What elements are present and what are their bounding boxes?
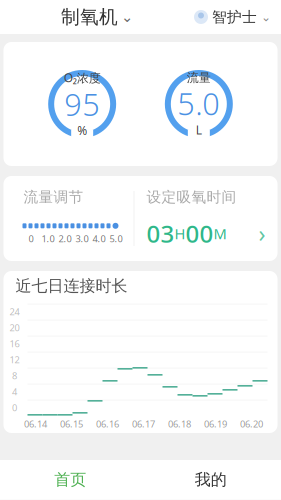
staticText: 06.19 (204, 418, 227, 430)
staticText: 设定吸氧时间 (146, 188, 236, 206)
staticText: % (77, 122, 87, 138)
staticText: 5.0 (177, 83, 220, 124)
staticText: 制氧机 (61, 5, 118, 28)
staticText: 8 (12, 369, 17, 382)
staticText: 0 (28, 232, 33, 245)
staticText: 06.20 (240, 418, 263, 430)
staticText: 4 (12, 385, 17, 398)
staticText: 3.0 (75, 232, 88, 245)
staticText: 近七日连接时长 (15, 276, 127, 296)
staticText: 95 (64, 84, 100, 124)
staticText: 16 (9, 337, 19, 350)
staticText: 06.15 (60, 418, 83, 430)
button[interactable]: 我的 (140, 460, 281, 500)
staticText: 流量调节 (23, 188, 83, 206)
staticText: 03 (146, 218, 174, 249)
staticText: 06.14 (24, 418, 47, 430)
staticText: ⌄ (261, 10, 271, 24)
staticText: 首页 (54, 470, 86, 490)
staticText: 24 (9, 305, 19, 318)
staticText: › (258, 218, 265, 249)
staticText: 4.0 (92, 232, 105, 245)
staticText: 1.0 (41, 232, 54, 245)
staticText: 流量 (187, 70, 211, 85)
staticText: M (213, 224, 226, 243)
staticText: 20 (9, 321, 19, 334)
staticText: 2.0 (58, 232, 71, 245)
staticText: O₂浓度 (64, 70, 101, 86)
button[interactable]: 首页 (0, 460, 140, 500)
staticText: H (174, 224, 185, 243)
staticText: 12 (9, 353, 19, 366)
staticText: ⌄ (121, 9, 133, 25)
button[interactable]: 智护士 (194, 8, 281, 26)
staticText: 06.17 (132, 418, 155, 430)
staticText: 0 (12, 401, 17, 414)
staticText: 智护士 (212, 8, 257, 26)
staticText: 我的 (195, 470, 227, 490)
staticText: 06.16 (96, 418, 119, 430)
staticText: 5.0 (109, 232, 122, 245)
staticText: L (196, 122, 202, 138)
button[interactable]: 制氧机 (61, 5, 133, 28)
staticText: 06.18 (168, 418, 191, 430)
staticText: 00 (185, 218, 213, 249)
button[interactable]: 03 (134, 216, 277, 250)
